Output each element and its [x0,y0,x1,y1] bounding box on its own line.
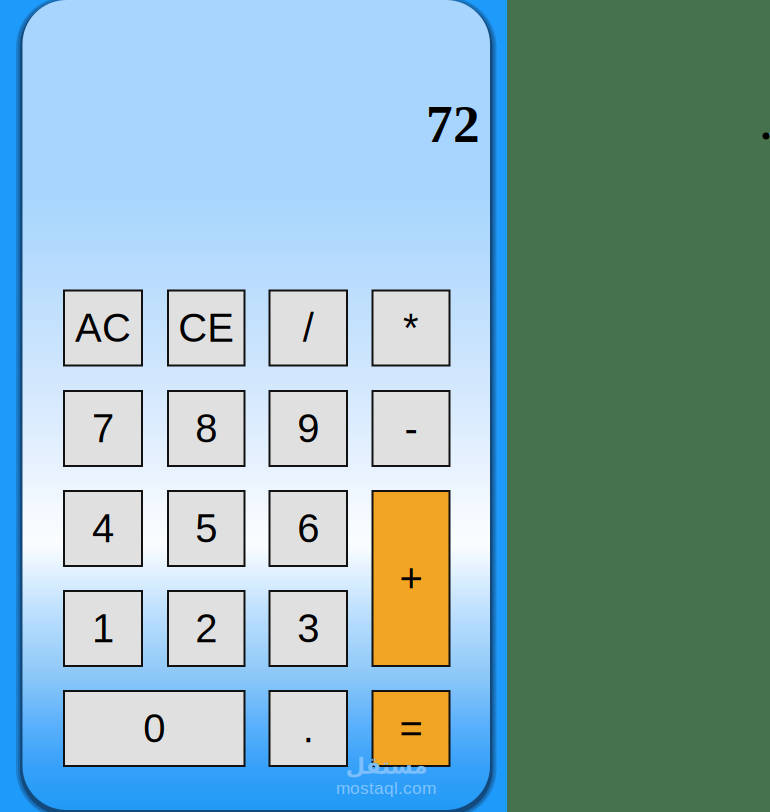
button[interactable]: 0 [64,691,244,766]
button[interactable]: 4 [64,491,142,566]
staticText: 9 [297,406,319,451]
staticText: * [403,306,419,350]
staticText: 6 [297,506,319,551]
button[interactable]: AC [64,290,142,365]
staticText: - [404,406,417,451]
button[interactable]: 3 [269,591,347,666]
staticText: 1 [92,606,114,651]
staticText: / [303,306,314,350]
button[interactable]: 2 [168,591,244,666]
staticText: = [399,706,422,751]
button[interactable]: 7 [64,391,142,466]
button[interactable]: 5 [168,491,244,566]
button[interactable]: / [269,290,347,365]
staticText: 2 [195,606,217,651]
staticText: مستقل [345,753,427,779]
button[interactable]: + [372,491,449,666]
staticText: AC [75,306,131,350]
staticText: 72 [426,94,480,154]
staticText: + [399,556,422,601]
staticText: 0 [143,706,165,751]
staticText: mostaql.com [336,778,436,798]
button[interactable]: - [372,391,449,466]
staticText: CE [178,306,234,350]
staticText: 8 [195,406,217,451]
button[interactable]: . [269,691,347,766]
staticText: 4 [92,506,114,551]
button[interactable]: = [372,691,449,766]
button[interactable]: * [372,290,449,365]
button[interactable]: 1 [64,591,142,666]
staticText: 3 [297,606,319,651]
button[interactable]: 8 [168,391,244,466]
button[interactable]: Overflow control [760,132,770,139]
staticText: 7 [92,406,114,451]
button[interactable]: 9 [269,391,347,466]
staticText: . [303,706,314,751]
button[interactable]: 6 [269,491,347,566]
button[interactable]: CE [168,290,244,365]
staticText: 5 [195,506,217,551]
